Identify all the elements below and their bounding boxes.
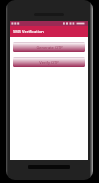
button[interactable]: Generate OTP bbox=[13, 42, 85, 52]
button[interactable]: Verify OTP bbox=[13, 57, 85, 67]
staticText: Generate OTP bbox=[36, 45, 63, 50]
staticText: SMS Verification bbox=[13, 29, 44, 34]
staticText: Verify OTP bbox=[39, 60, 59, 65]
